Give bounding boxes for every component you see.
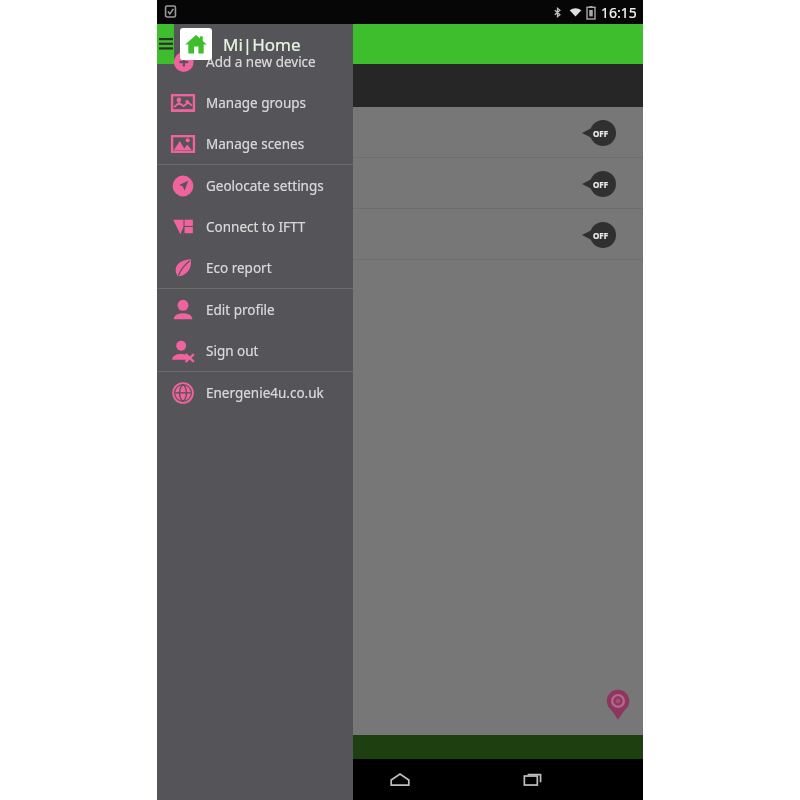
staticText: Connect to IFTT bbox=[206, 218, 306, 236]
staticText: OFF bbox=[593, 179, 609, 190]
button[interactable]: Manage scenes bbox=[157, 123, 353, 164]
staticText: Manage groups bbox=[206, 94, 307, 112]
staticText: 16:15 bbox=[601, 3, 637, 22]
button[interactable]: Recents bbox=[510, 759, 556, 800]
button[interactable]: Toggle off bbox=[157, 158, 643, 209]
staticText: OFF bbox=[593, 128, 609, 139]
staticText: Add a new device bbox=[206, 53, 316, 71]
staticText: OFF bbox=[593, 230, 609, 241]
button[interactable]: Eco report bbox=[157, 247, 353, 288]
staticText: Geolocate settings bbox=[206, 177, 324, 195]
button[interactable]: Geolocate settings bbox=[157, 165, 353, 206]
button[interactable]: Home bbox=[377, 759, 423, 800]
button[interactable]: Add a new device bbox=[157, 41, 353, 82]
button[interactable]: Menu bbox=[157, 24, 174, 64]
button[interactable]: Devices bbox=[214, 64, 344, 107]
staticText: Manage scenes bbox=[206, 135, 305, 153]
button[interactable]: Energenie4u.co.uk bbox=[157, 372, 353, 413]
button[interactable]: Toggle off bbox=[157, 107, 643, 158]
staticText: Sign out bbox=[206, 342, 259, 360]
button[interactable]: Geolocate bbox=[601, 687, 635, 721]
button[interactable]: Toggle off bbox=[582, 120, 616, 146]
button[interactable]: Toggle off bbox=[582, 171, 616, 197]
staticText: Eco report bbox=[206, 259, 272, 277]
button[interactable]: Toggle off bbox=[582, 222, 616, 248]
staticText: Mi|Home bbox=[223, 33, 301, 56]
button[interactable]: Connect to IFTT bbox=[157, 206, 353, 247]
button[interactable]: Manage groups bbox=[157, 82, 353, 123]
staticText: Edit profile bbox=[206, 301, 275, 319]
button[interactable]: Edit profile bbox=[157, 289, 353, 330]
button[interactable]: Sign out bbox=[157, 330, 353, 371]
button[interactable]: Toggle off bbox=[157, 209, 643, 260]
staticText: Energenie4u.co.uk bbox=[206, 384, 324, 402]
